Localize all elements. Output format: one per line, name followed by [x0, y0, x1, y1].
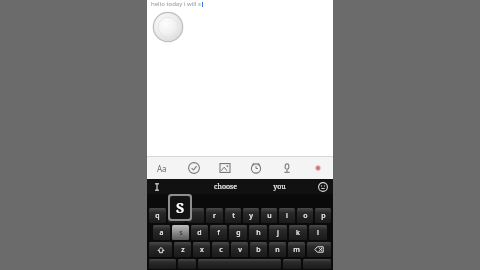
staticText: o	[303, 211, 308, 221]
button[interactable]: Period	[283, 259, 301, 269]
button[interactable]: choose	[214, 182, 237, 192]
staticText: j	[277, 228, 279, 238]
button[interactable]: Tasks	[185, 159, 203, 177]
staticText: c	[219, 245, 223, 255]
staticText: p	[321, 211, 326, 221]
button[interactable]: Formatting	[153, 159, 171, 177]
staticText: Aa	[157, 163, 167, 174]
button[interactable]: f	[210, 225, 227, 240]
staticText: f	[217, 228, 220, 238]
staticText: q	[155, 211, 160, 221]
button[interactable]: Space	[198, 259, 281, 269]
staticText: hello today i will s	[151, 0, 201, 7]
button[interactable]: p	[315, 208, 331, 223]
button[interactable]: i	[279, 208, 295, 223]
staticText: v	[238, 245, 242, 255]
button[interactable]: Symbols	[149, 259, 176, 269]
staticText: y	[249, 211, 253, 221]
staticText: t	[232, 211, 235, 221]
staticText: n	[275, 245, 280, 255]
button[interactable]: m	[288, 242, 305, 257]
button[interactable]: s	[172, 225, 189, 240]
staticText: x	[200, 245, 204, 255]
button[interactable]: a	[153, 225, 170, 240]
button[interactable]: Backspace	[307, 242, 331, 257]
staticText: m	[293, 245, 300, 255]
staticText: k	[296, 228, 300, 238]
button[interactable]: u	[261, 208, 277, 223]
staticText: h	[256, 228, 261, 238]
staticText: d	[197, 228, 202, 238]
button[interactable]: y	[243, 208, 259, 223]
button[interactable]: r	[206, 208, 223, 223]
staticText: l	[317, 228, 319, 238]
button[interactable]: t	[225, 208, 241, 223]
button[interactable]: h	[249, 225, 267, 240]
button[interactable]: b	[250, 242, 267, 257]
button[interactable]: v	[231, 242, 248, 257]
staticText: you	[273, 182, 286, 192]
button[interactable]: Clipboard	[151, 181, 162, 192]
button[interactable]: Reminder	[247, 159, 265, 177]
button[interactable]: g	[229, 225, 247, 240]
button[interactable]: n	[269, 242, 286, 257]
button[interactable]: l	[309, 225, 327, 240]
button[interactable]: q	[149, 208, 166, 223]
button[interactable]: Voice input	[278, 159, 296, 177]
button[interactable]: Emoji	[317, 181, 329, 193]
button[interactable]: k	[289, 225, 307, 240]
staticText: z	[181, 245, 185, 255]
staticText: g	[236, 228, 241, 238]
staticText: b	[256, 245, 261, 255]
staticText: choose	[214, 182, 237, 192]
button[interactable]: Enter	[303, 259, 331, 269]
button[interactable]: x	[193, 242, 210, 257]
button[interactable]: Voice typing	[178, 259, 196, 269]
button[interactable]	[187, 208, 204, 223]
staticText: r	[213, 211, 216, 221]
button[interactable]: d	[191, 225, 208, 240]
button[interactable]: you	[273, 182, 286, 192]
staticText: S	[176, 198, 185, 217]
staticText: s	[179, 228, 183, 238]
button[interactable]: o	[297, 208, 313, 223]
button[interactable]	[168, 208, 185, 223]
button[interactable]: More	[309, 159, 327, 177]
staticText: i	[286, 211, 288, 221]
button[interactable]: z	[174, 242, 191, 257]
button[interactable]: Insert image	[216, 159, 234, 177]
button[interactable]: j	[269, 225, 287, 240]
button[interactable]: Shift	[149, 242, 172, 257]
button[interactable]: c	[212, 242, 229, 257]
staticText: a	[159, 228, 164, 238]
staticText: u	[267, 211, 272, 221]
